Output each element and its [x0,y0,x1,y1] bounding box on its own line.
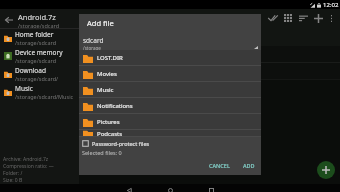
button[interactable]: Podcasts [79,130,261,137]
button[interactable]: Music [79,82,261,98]
button[interactable]: More options [325,10,337,26]
staticText: Music [15,84,33,93]
staticText: Selected files: 0 [82,149,122,156]
staticText: CANCEL [209,162,230,169]
staticText: Notifications [97,102,133,110]
staticText: /storage [83,45,101,50]
staticText: Compression ratio: — [3,163,54,170]
button[interactable]: Device memory [0,47,79,65]
button[interactable]: Pictures [79,114,261,130]
button[interactable]: CANCEL [205,159,234,172]
staticText: Movies [97,70,117,78]
button[interactable]: Grid view [280,10,296,26]
button[interactable]: Select all [264,10,282,26]
staticText: Archive: Android.7z [3,156,49,163]
button[interactable]: LOST.DIR [79,50,261,66]
staticText: ADD [243,162,255,169]
button[interactable]: Recents [191,186,232,192]
button[interactable]: Notifications [79,98,261,114]
staticText: Android.7z [18,12,56,22]
button[interactable]: sdcard [79,35,261,50]
staticText: LOST.DIR [97,54,123,62]
staticText: Home folder [15,30,54,39]
button[interactable]: Movies [79,66,261,82]
button[interactable]: Add file [317,161,335,179]
button[interactable]: Home folder [0,29,79,47]
staticText: Download [15,66,46,75]
button[interactable]: Android.7z [0,9,79,28]
button[interactable]: Music [0,83,79,101]
staticText: Size: 0 B [3,177,23,184]
staticText: Podcasts [97,130,123,137]
staticText: 12:02 [323,1,339,9]
button[interactable]: Download [0,65,79,83]
staticText: Music [97,86,114,94]
button[interactable]: Add [310,10,326,26]
button[interactable]: Back [109,186,150,192]
staticText: Add file [87,18,114,28]
staticText: Folder: / [3,170,23,177]
button[interactable]: Home [150,186,191,192]
staticText: sdcard [83,36,104,45]
button[interactable]: Password-protect files [79,137,261,149]
staticText: /storage/sdcard/Download [15,75,79,82]
button[interactable]: Sort [295,10,311,26]
staticText: Pictures [97,118,120,126]
staticText: /storage/sdcard [18,22,60,29]
staticText: /storage/sdcard [15,39,57,46]
staticText: /storage/sdcard/Music [15,93,74,100]
button[interactable]: ADD [239,159,259,172]
staticText: Device memory [15,48,63,57]
staticText: Password-protect files [92,140,150,147]
staticText: /storage/sdcard [15,57,57,64]
